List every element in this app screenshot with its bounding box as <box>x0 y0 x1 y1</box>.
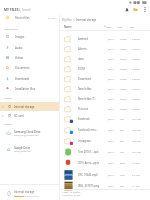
staticText: Jan 1... <box>108 68 116 71</box>
staticText: allison_59.1@samsung.com <box>14 134 39 137</box>
staticText: SD card <box>14 114 24 118</box>
staticText: 0 items <box>132 68 140 71</box>
staticText: 0 items <box>132 48 140 51</box>
button[interactable]: Google Drive <box>0 144 59 155</box>
button[interactable]: My files <box>62 16 97 23</box>
button[interactable]: Test 20161....apk <box>60 147 150 157</box>
staticText: Type <box>117 25 123 28</box>
button[interactable]: Audio <box>0 43 59 52</box>
button[interactable]: Instagram <box>60 136 150 146</box>
staticText: 3.1 MB <box>132 185 140 188</box>
button[interactable]: Create folder <box>131 5 140 14</box>
button[interactable]: Samsung Cloud Drive <box>0 128 59 139</box>
button[interactable]: Date <box>106 25 112 28</box>
staticText: Folder <box>120 58 127 61</box>
staticText: Search <box>22 8 31 12</box>
button[interactable]: Images <box>0 32 59 41</box>
button[interactable]: Search <box>17 5 45 14</box>
button[interactable]: 2016 Annu...pptx <box>60 158 150 168</box>
staticText: IMG_457875.png <box>78 184 100 188</box>
button[interactable]: Alarms <box>60 44 150 54</box>
staticText: Facebook <box>78 117 90 121</box>
staticText: apk <box>120 140 124 143</box>
staticText: Alarms <box>78 47 87 51</box>
staticText: Jan 1... <box>108 88 116 91</box>
staticText: My files <box>48 16 57 19</box>
button[interactable]: Facebook mes... <box>60 125 150 135</box>
staticText: Recent files <box>15 16 30 20</box>
staticText: Facebook mes... <box>78 128 98 132</box>
staticText: Jan 1... <box>108 98 116 101</box>
staticText: DCIM <box>78 67 85 71</box>
staticText: Jan 1... <box>108 118 116 121</box>
staticText: mp4 <box>120 174 125 177</box>
staticText: New folder (1) <box>78 97 96 101</box>
staticText: Jan 1... <box>108 174 116 177</box>
staticText: Pictures <box>78 107 88 111</box>
button[interactable]: Download <box>60 74 150 84</box>
staticText: Videos <box>15 56 24 60</box>
staticText: 0 items <box>132 78 140 81</box>
button[interactable]: IMG_457875.png <box>60 181 150 191</box>
button[interactable]: Pictures <box>60 104 150 114</box>
button[interactable]: Account <box>122 5 131 14</box>
staticText: 2016 Annu...pptx <box>78 161 100 165</box>
button[interactable]: New folder <box>60 84 150 94</box>
button[interactable]: Size <box>130 25 135 28</box>
staticText: Internal storage <box>76 18 97 22</box>
button[interactable]: Documents <box>0 63 59 72</box>
staticText: Download <box>78 77 91 81</box>
staticText: Images <box>15 35 25 39</box>
staticText: Jan 1... <box>108 140 116 143</box>
staticText: apk <box>120 151 124 154</box>
button[interactable]: Internal storage <box>0 102 59 111</box>
staticText: 47.9 MB <box>132 151 141 154</box>
staticText: Google Drive <box>14 146 31 150</box>
staticText: png <box>120 185 125 188</box>
staticText: 0 items <box>132 58 140 61</box>
staticText: Folder <box>120 88 127 91</box>
staticText: Android <box>78 37 88 41</box>
staticText: Folder <box>120 68 127 71</box>
staticText: Jan 1... <box>108 38 116 41</box>
staticText: 1.2 MB <box>132 162 140 165</box>
staticText: Internal storage <box>14 190 35 194</box>
button[interactable]: DSC 15646.mp4 <box>60 170 150 180</box>
button[interactable]: Android <box>60 34 150 44</box>
staticText: Name <box>64 25 72 29</box>
staticText: Documents <box>15 66 30 70</box>
button[interactable]: Downloads <box>0 74 59 83</box>
staticText: Jan 1... <box>108 78 116 81</box>
staticText: Size <box>130 25 135 28</box>
staticText: Jan 1... <box>108 48 116 51</box>
button[interactable]: Type <box>117 25 123 28</box>
staticText: Internal storage <box>14 105 35 109</box>
staticText: CATEGORIES <box>4 28 18 31</box>
button[interactable]: Videos <box>0 53 59 62</box>
staticText: 4 files, 12 folders <box>62 191 81 194</box>
staticText: 0 items <box>132 98 140 101</box>
button[interactable]: Installation files <box>0 84 59 93</box>
button[interactable]: SD card <box>0 111 59 120</box>
staticText: CLOUD <box>4 123 12 126</box>
button[interactable]: data <box>60 54 150 64</box>
staticText: Folder <box>120 78 127 81</box>
staticText: Folder <box>120 38 127 41</box>
staticText: Jan 1... <box>108 185 116 188</box>
staticText: 14.32 GB / 32 GB <box>62 194 81 197</box>
button[interactable]: New folder (1) <box>60 94 150 104</box>
staticText: Downloads <box>15 77 30 81</box>
button[interactable]: Facebook <box>60 114 150 124</box>
staticText: 4.5 MB <box>132 174 140 177</box>
staticText: 47.9 MB <box>132 129 141 132</box>
staticText: Jan 1... <box>108 58 116 61</box>
staticText: Installation files <box>15 87 35 91</box>
button[interactable]: Internal storage <box>0 185 59 200</box>
button[interactable]: Recent files <box>0 13 59 22</box>
staticText: My files <box>62 18 72 22</box>
staticText: Date <box>106 25 112 28</box>
button[interactable]: More options <box>140 5 149 14</box>
button[interactable]: Sort by date <box>103 24 107 28</box>
button[interactable]: DCIM <box>60 64 150 74</box>
staticText: apk <box>120 118 124 121</box>
